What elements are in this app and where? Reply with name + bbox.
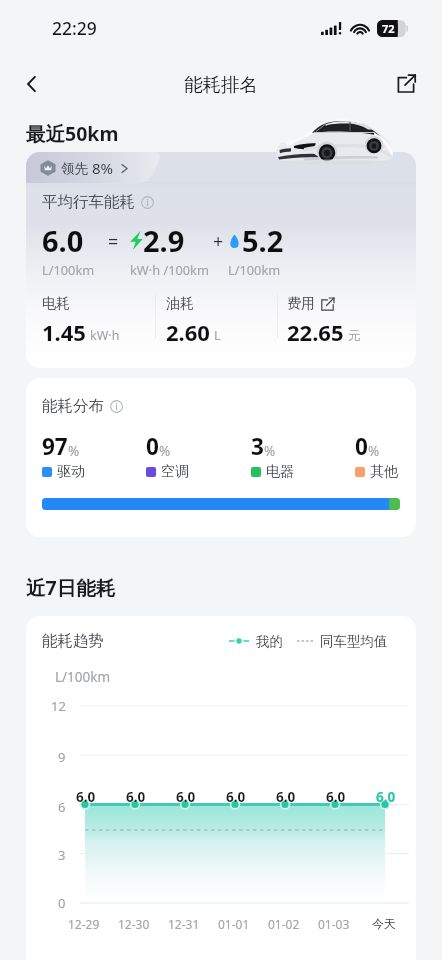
staticText: 0	[355, 431, 368, 462]
staticText: 其他	[370, 463, 398, 481]
staticText: 能耗趋势	[42, 631, 104, 651]
staticText: 2.9	[143, 221, 185, 260]
staticText: 油耗	[166, 295, 194, 313]
staticText: 9	[58, 748, 66, 766]
staticText: 0	[58, 894, 66, 912]
staticText: 6.0	[276, 788, 296, 806]
staticText: 12-29	[68, 916, 100, 932]
staticText: 97	[42, 431, 68, 462]
staticText: 6.0	[376, 788, 396, 806]
staticText: 6	[58, 798, 66, 816]
staticText: 6.0	[126, 788, 146, 806]
staticText: 12-30	[118, 916, 150, 932]
staticText: 最近50km	[26, 120, 119, 147]
staticText: %	[68, 442, 80, 460]
staticText: 元	[348, 328, 361, 344]
staticText: 6.0	[326, 788, 346, 806]
staticText: 费用	[287, 295, 315, 313]
staticText: L	[214, 327, 221, 344]
staticText: 01-02	[268, 916, 300, 932]
staticText: 3	[251, 431, 264, 462]
staticText: 6.0	[226, 788, 246, 806]
staticText: 近7日能耗	[26, 574, 116, 601]
staticText: =	[108, 229, 119, 254]
staticText: L/100km	[228, 261, 281, 278]
staticText: 能耗分布	[42, 396, 104, 416]
staticText: 01-01	[218, 916, 250, 932]
staticText: 6.0	[76, 788, 96, 806]
staticText: 6.0	[176, 788, 196, 806]
staticText: %	[264, 442, 276, 460]
staticText: 8%	[92, 158, 114, 178]
staticText: +	[213, 229, 224, 254]
staticText: 驱动	[57, 463, 85, 481]
staticText: 22:29	[52, 16, 97, 40]
staticText: 电耗	[42, 295, 70, 313]
staticText: 72	[382, 21, 395, 36]
staticText: 平均行车能耗	[42, 192, 135, 212]
staticText: 能耗排名	[184, 73, 258, 96]
staticText: L/100km	[55, 668, 111, 686]
staticText: kW·h /100km	[130, 261, 209, 278]
staticText: %	[159, 442, 171, 460]
button[interactable]: Share	[388, 66, 424, 102]
staticText: 01-03	[318, 916, 350, 932]
staticText: 22.65	[287, 317, 344, 347]
staticText: kW·h	[90, 327, 120, 344]
staticText: 1.45	[42, 317, 86, 347]
staticText: 同车型均值	[320, 633, 388, 650]
staticText: 领先	[61, 160, 88, 177]
staticText: 3	[58, 846, 66, 864]
button[interactable]: Back	[12, 64, 52, 104]
staticText: 5.2	[242, 221, 284, 260]
staticText: 6.0	[42, 221, 84, 260]
staticText: L/100km	[42, 261, 95, 278]
staticText: 2.60	[166, 317, 210, 347]
staticText: 12	[51, 697, 66, 715]
staticText: %	[368, 442, 380, 460]
button[interactable]	[26, 152, 160, 183]
staticText: 空调	[161, 463, 189, 481]
staticText: 12-31	[168, 916, 200, 932]
staticText: 我的	[256, 633, 283, 650]
staticText: 电器	[266, 463, 294, 481]
staticText: 0	[146, 431, 159, 462]
staticText: 今天	[372, 916, 396, 931]
